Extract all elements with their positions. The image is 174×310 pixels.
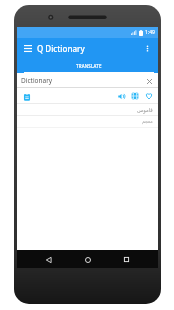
- staticText: Dictionary: [21, 76, 53, 85]
- button[interactable]: TRANSLATE: [20, 59, 158, 73]
- button[interactable]: Translate online: [129, 90, 141, 102]
- button[interactable]: Home: [80, 252, 95, 267]
- button[interactable]: Speak word: [115, 90, 127, 102]
- staticText: 1:49: [145, 29, 155, 36]
- staticText: معجم: [142, 119, 153, 124]
- button[interactable]: Clear search text: [144, 76, 154, 86]
- button[interactable]: More options: [141, 42, 154, 55]
- button[interactable]: Open navigation drawer: [21, 42, 34, 55]
- staticText: Q Dictionary: [37, 43, 85, 54]
- button[interactable]: Recent apps: [119, 252, 134, 267]
- staticText: قاموس: [137, 107, 153, 113]
- button[interactable]: Add to favorites: [143, 90, 155, 102]
- button[interactable]: Copy to clipboard: [20, 90, 33, 103]
- button[interactable]: Back: [41, 252, 56, 267]
- staticText: TRANSLATE: [76, 63, 102, 69]
